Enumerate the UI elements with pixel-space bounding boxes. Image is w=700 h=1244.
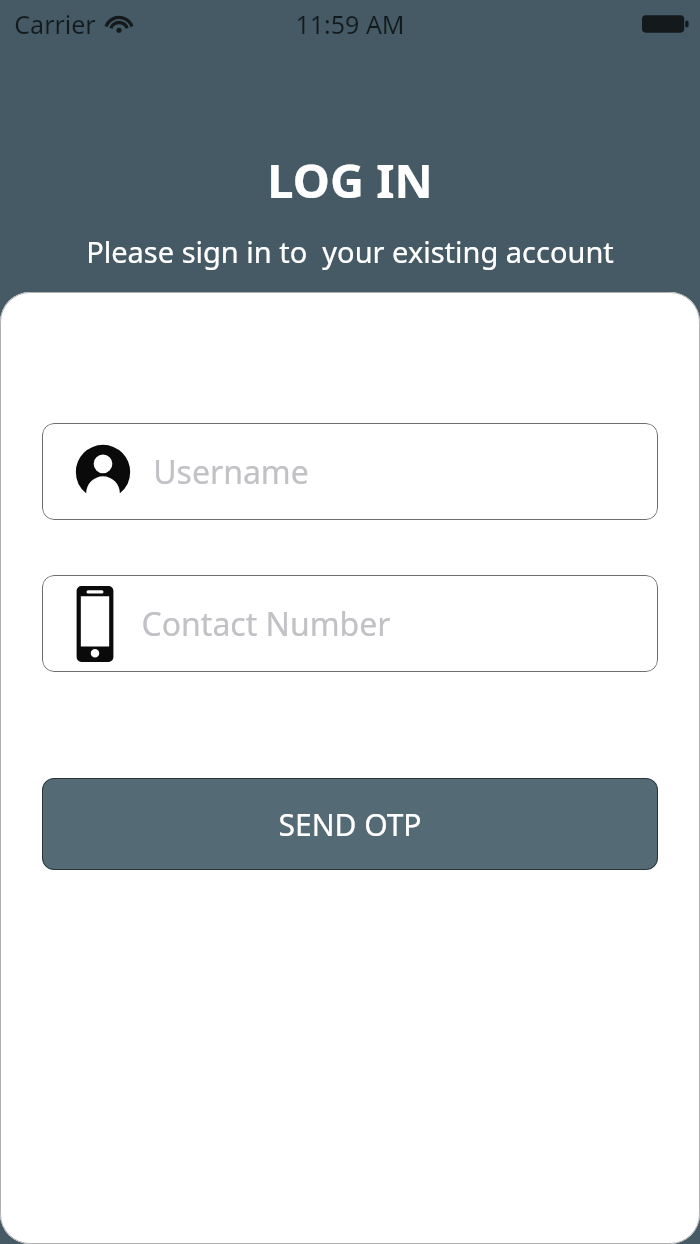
button[interactable]: SEND OTP	[42, 778, 658, 870]
staticText: Username	[153, 450, 309, 494]
staticText: Contact Number	[141, 602, 391, 646]
other: Contact Number	[75, 586, 115, 662]
staticText: Carrier	[14, 7, 96, 41]
other: Username	[75, 444, 131, 500]
button[interactable]: Username	[42, 423, 658, 520]
staticText: SEND OTP	[278, 804, 422, 845]
button[interactable]: Contact Number	[42, 575, 658, 672]
staticText: LOG IN	[267, 148, 433, 212]
staticText: 11:59 AM	[295, 7, 405, 41]
staticText: Please sign in to your existing account	[86, 232, 614, 271]
